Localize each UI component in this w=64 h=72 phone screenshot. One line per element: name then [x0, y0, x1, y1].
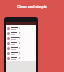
button[interactable]	[7, 56, 36, 60]
button[interactable]	[7, 51, 36, 55]
button[interactable]	[7, 26, 36, 30]
button[interactable]	[7, 46, 36, 50]
button[interactable]	[7, 36, 36, 40]
staticText: Clean and simple	[0, 4, 64, 9]
button[interactable]	[7, 31, 36, 35]
button[interactable]	[7, 41, 36, 45]
